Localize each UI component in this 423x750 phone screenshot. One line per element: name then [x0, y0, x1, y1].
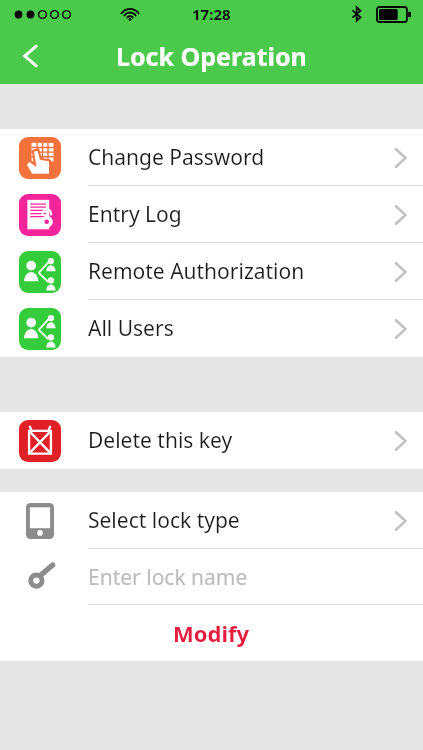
staticText: 17:28 [192, 4, 231, 24]
staticText: Modify [173, 618, 250, 648]
staticText: Select lock type [88, 506, 394, 535]
button[interactable]: Select lock type [0, 492, 423, 549]
button[interactable]: All Users [0, 300, 423, 357]
staticText: Enter lock name [88, 563, 407, 592]
staticText: All Users [88, 314, 394, 343]
button[interactable]: Entry Log [0, 186, 423, 243]
staticText: Change Password [88, 143, 394, 172]
button[interactable]: Back [0, 28, 62, 84]
staticText: Entry Log [88, 200, 394, 229]
staticText: Remote Authorization [88, 257, 394, 286]
staticText: Lock Operation [116, 39, 307, 73]
button[interactable]: Enter lock name [0, 549, 423, 605]
button[interactable]: Remote Authorization [0, 243, 423, 300]
button[interactable]: Change Password [0, 129, 423, 186]
button[interactable]: Delete this key [0, 412, 423, 469]
staticText: Delete this key [88, 426, 394, 455]
button[interactable]: Modify [0, 605, 423, 661]
